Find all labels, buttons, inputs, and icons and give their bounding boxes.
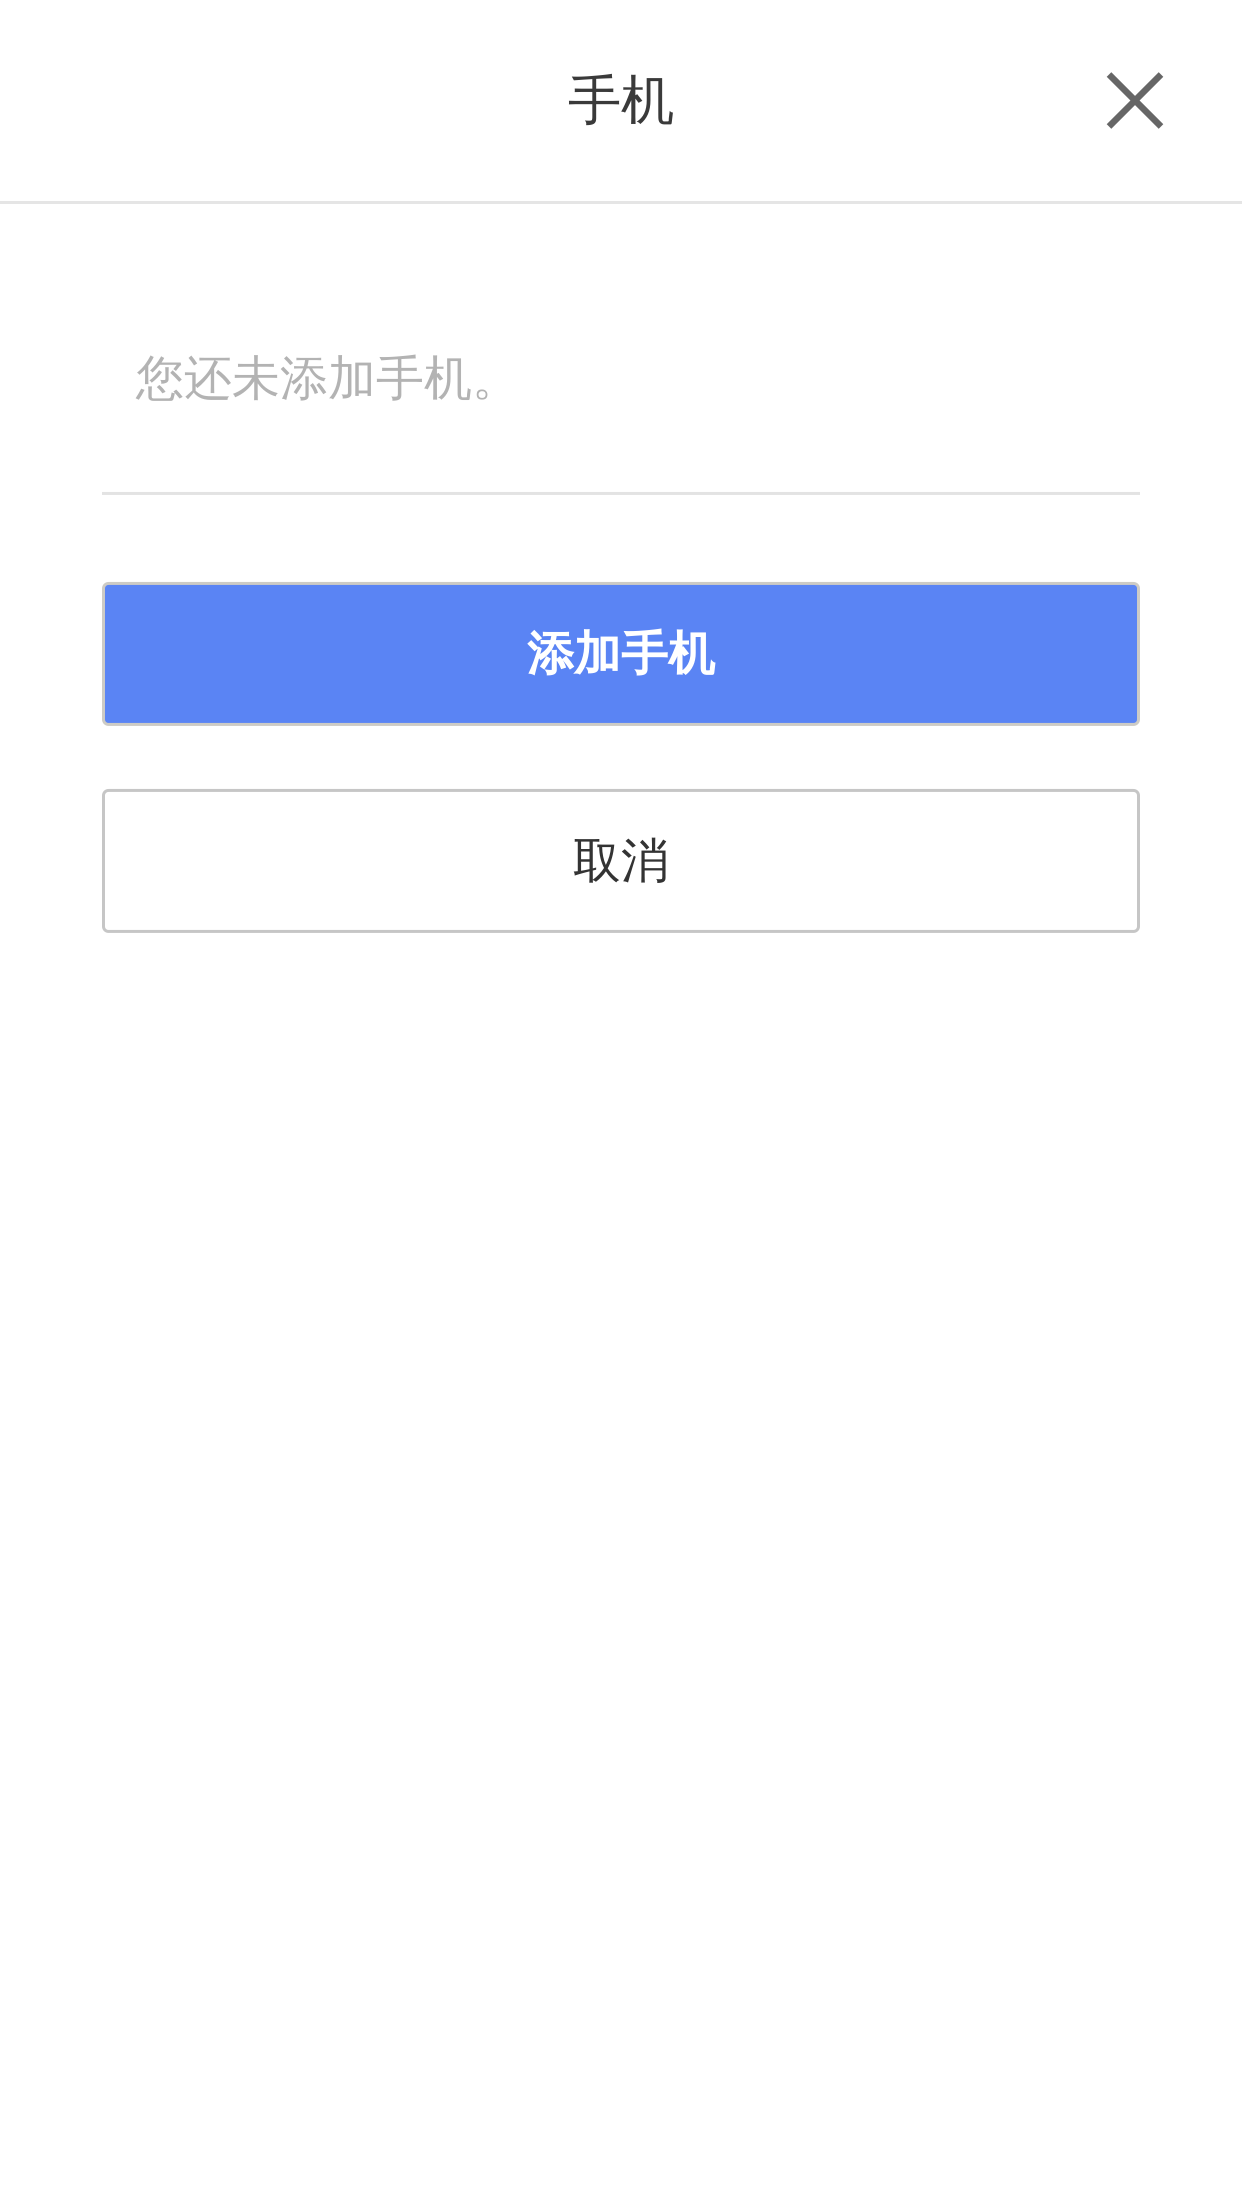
staticText: 您还未添加手机。: [136, 349, 520, 408]
staticText: 添加手机: [527, 625, 715, 683]
staticText: 取消: [573, 831, 669, 890]
button[interactable]: 添加手机: [102, 582, 1140, 726]
button[interactable]: 取消: [102, 789, 1140, 933]
button[interactable]: Close: [1068, 33, 1202, 167]
staticText: 手机: [568, 68, 674, 133]
